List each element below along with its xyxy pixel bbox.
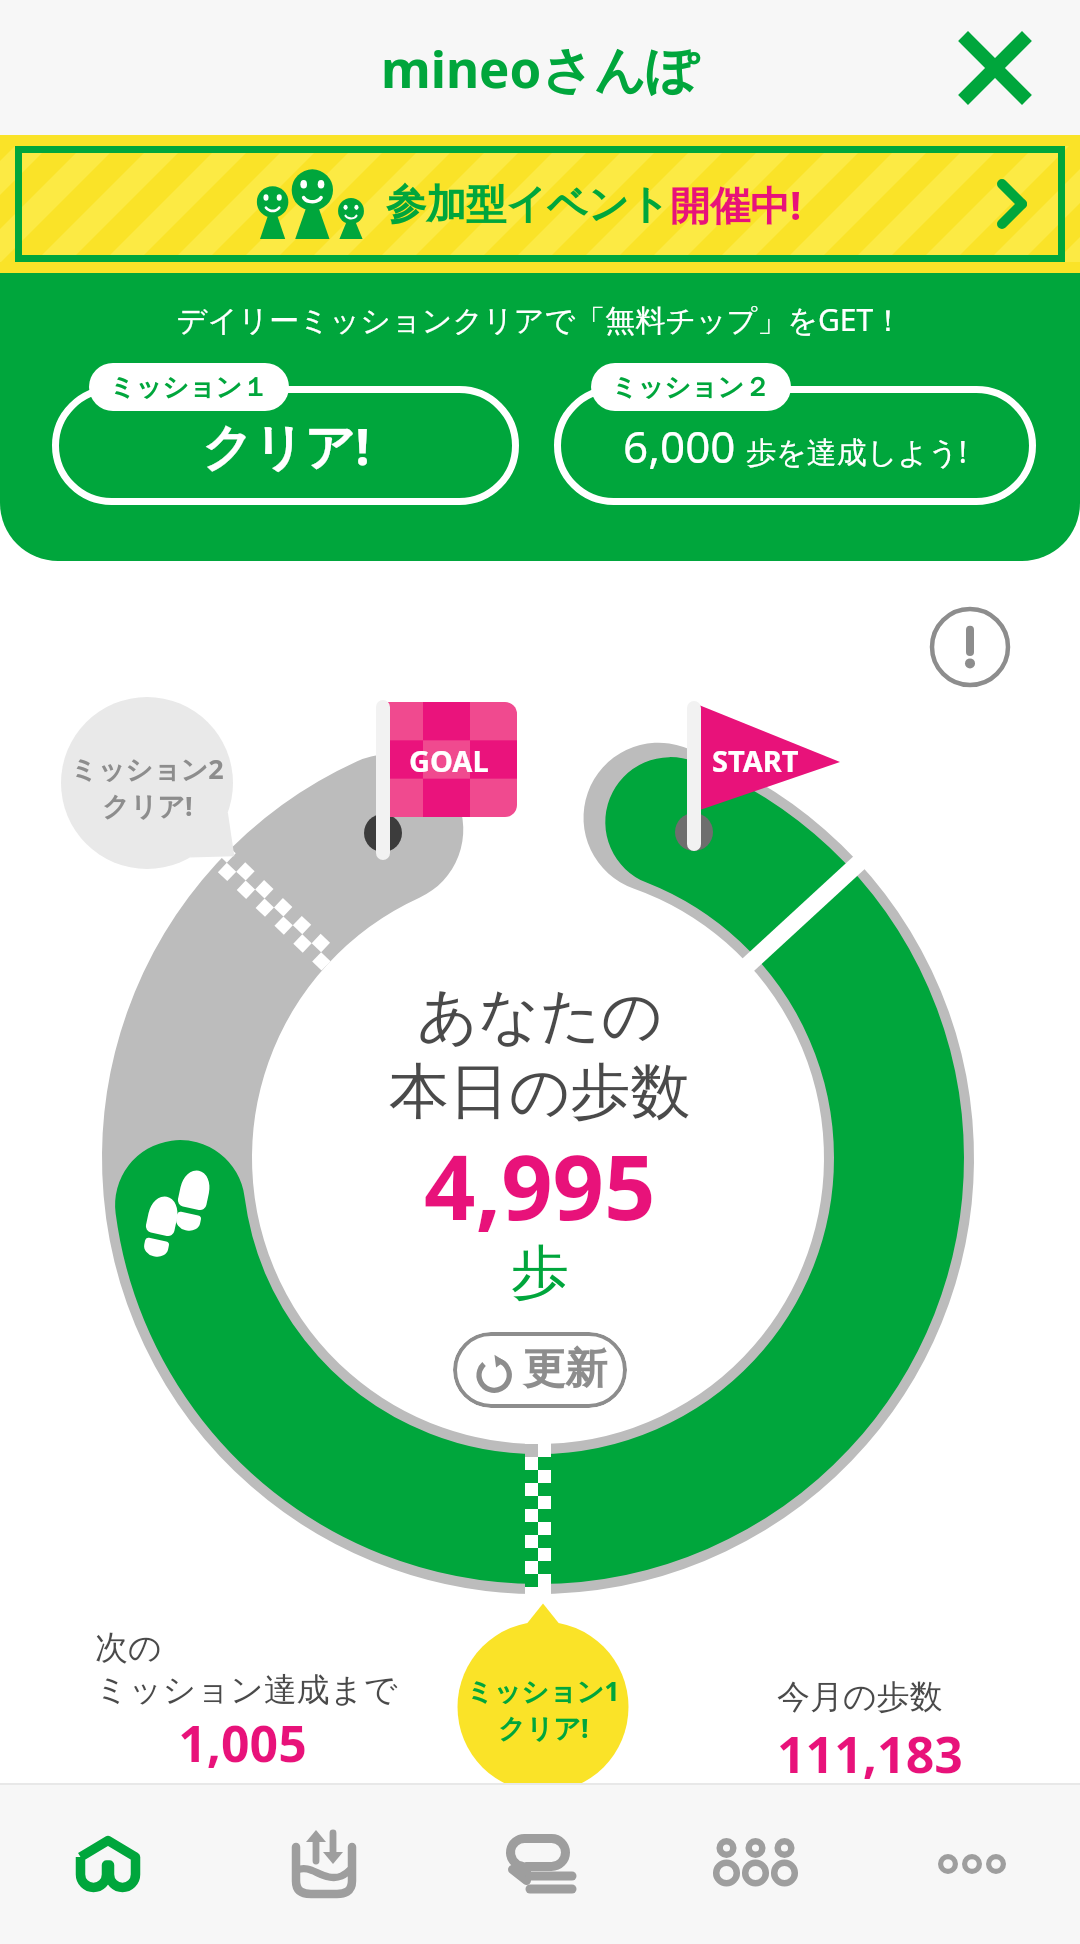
button[interactable]: Community chat (432, 1783, 648, 1944)
staticText: START (712, 741, 799, 780)
button[interactable]: More (864, 1783, 1080, 1944)
staticText: 参加型イベント (386, 179, 670, 229)
button[interactable]: Close (952, 25, 1038, 111)
staticText: ミッション1 (466, 1672, 620, 1709)
staticText: クリア! (102, 787, 193, 824)
staticText: 4,995 (424, 1124, 656, 1247)
staticText: ミッション１ (109, 371, 269, 404)
staticText: 本日の歩数 (389, 1054, 691, 1130)
staticText: mineoさんぽ (381, 33, 699, 103)
button[interactable]: Home (0, 1783, 216, 1944)
button[interactable]: クリア! (52, 363, 519, 505)
staticText: 歩 (511, 1236, 569, 1309)
button[interactable]: 参加型イベント (0, 135, 1080, 273)
staticText: デイリーミッションクリアで「無料チップ」をGET！ (0, 299, 1080, 340)
staticText: クリア! (498, 1709, 589, 1746)
button[interactable]: 更新 (453, 1332, 627, 1408)
staticText: GOAL (409, 741, 489, 780)
button[interactable]: Information (929, 606, 1011, 688)
button[interactable]: Members (648, 1783, 864, 1944)
button[interactable]: Data usage (216, 1783, 432, 1944)
staticText: 今月の歩数 (777, 1676, 943, 1718)
staticText: ミッション達成まで (95, 1669, 398, 1711)
staticText: 次の (95, 1627, 162, 1669)
staticText: 歩を達成しよう! (746, 431, 967, 472)
staticText: 開催中! (670, 177, 802, 232)
staticText: クリア! (202, 412, 370, 480)
staticText: 更新 (523, 1343, 607, 1396)
button[interactable]: 6,000 (554, 363, 1036, 505)
staticText: 6,000 (623, 416, 736, 476)
staticText: ミッション2 (70, 750, 224, 787)
staticText: 1,005 (95, 1709, 390, 1777)
staticText: ミッション２ (611, 371, 771, 404)
staticText: 111,183 (777, 1720, 963, 1788)
staticText: あなたの (417, 978, 663, 1054)
